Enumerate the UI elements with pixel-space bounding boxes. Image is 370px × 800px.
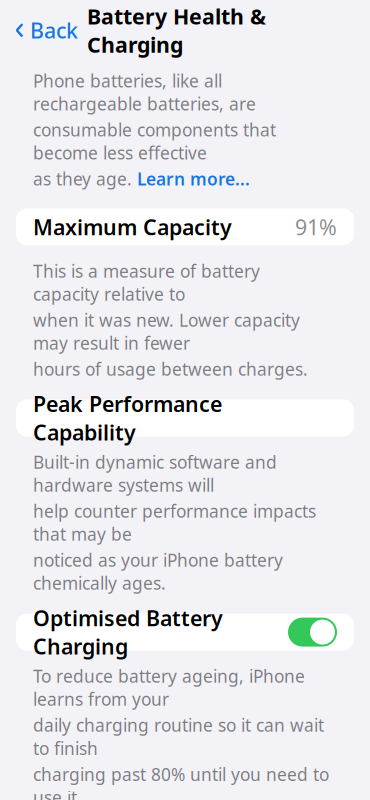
staticText: This is a measure of battery capacity re… (33, 259, 260, 305)
staticText: charging past 80% until you need to use … (33, 763, 329, 800)
staticText: daily charging routine so it can wait to… (33, 714, 324, 760)
staticText: Battery Health & Charging (87, 2, 266, 59)
staticText: hours of usage between charges. (33, 357, 308, 380)
button[interactable]: Back (10, 10, 82, 50)
staticText: Maximum Capacity (33, 213, 232, 241)
staticText: Optimised Battery Charging (33, 604, 223, 660)
staticText: as they age. (33, 167, 137, 190)
button[interactable]: Learn more... (137, 167, 250, 190)
button[interactable]: Peak Performance Capability (16, 399, 354, 436)
staticText: 91% (295, 213, 337, 241)
staticText: Peak Performance Capability (33, 390, 222, 446)
staticText: consumable components that become less e… (33, 118, 276, 164)
button[interactable]: Optimised Battery Charging (16, 614, 354, 651)
staticText: Learn more... (137, 167, 250, 190)
staticText: Built-in dynamic software and hardware s… (33, 450, 277, 496)
staticText: Back (30, 16, 78, 44)
staticText: help counter performance impacts that ma… (33, 499, 316, 545)
staticText: Phone batteries, like all rechargeable b… (33, 69, 256, 115)
staticText: noticed as your iPhone battery chemicall… (33, 549, 283, 595)
staticText: when it was new. Lower capacity may resu… (33, 308, 300, 354)
button[interactable]: Maximum Capacity (16, 208, 354, 245)
staticText: To reduce battery ageing, iPhone learns … (33, 665, 305, 711)
